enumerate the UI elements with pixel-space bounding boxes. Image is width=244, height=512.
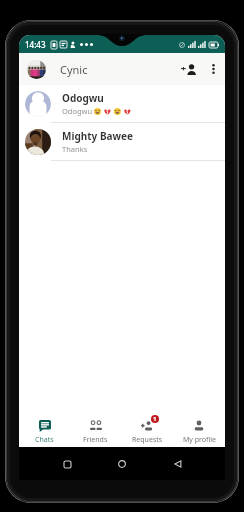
staticText: Mighty Bawee bbox=[62, 129, 134, 143]
button[interactable]: Mighty Bawee bbox=[19, 123, 225, 161]
staticText: Odogwu bbox=[62, 106, 93, 116]
button[interactable]: Chats bbox=[19, 420, 70, 447]
staticText: 1 bbox=[153, 415, 157, 423]
staticText: Friends bbox=[83, 435, 108, 445]
staticText: My profile bbox=[183, 435, 216, 445]
staticText: Requests bbox=[132, 435, 163, 445]
button[interactable]: Recents bbox=[59, 456, 75, 472]
staticText: Thanks bbox=[62, 144, 88, 154]
button[interactable]: Back bbox=[170, 456, 186, 472]
staticText: Odogwu bbox=[62, 91, 104, 105]
button[interactable]: Odogwu bbox=[19, 85, 225, 123]
button[interactable]: Home bbox=[114, 456, 130, 472]
staticText: Chats bbox=[35, 435, 54, 445]
button[interactable]: Friends bbox=[70, 420, 121, 447]
button[interactable]: More options bbox=[203, 56, 223, 82]
button[interactable]: My profile bbox=[173, 420, 225, 447]
button[interactable]: Profile photo bbox=[27, 60, 46, 79]
button[interactable]: Add contact bbox=[177, 56, 201, 82]
staticText: 14:43 bbox=[25, 39, 46, 50]
button[interactable]: 1 bbox=[121, 420, 173, 447]
staticText: Cynic bbox=[60, 62, 88, 77]
